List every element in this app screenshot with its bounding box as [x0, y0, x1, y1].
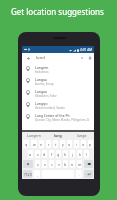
button[interactable]: d [42, 150, 47, 158]
staticText: u [68, 142, 71, 147]
staticText: q [25, 142, 28, 147]
staticText: s [37, 152, 39, 157]
button[interactable]: Back [22, 53, 94, 63]
staticText: t [55, 142, 57, 147]
staticText: Lungau [35, 77, 47, 81]
button[interactable]: ?123 [23, 170, 32, 178]
button[interactable]: , [34, 170, 40, 178]
staticText: h [64, 152, 67, 157]
staticText: lunge [77, 133, 87, 138]
button[interactable]: x [42, 160, 47, 168]
staticText: b [64, 162, 67, 167]
staticText: v [58, 162, 60, 167]
staticText: Get location suggestions [11, 6, 104, 17]
other: Back [26, 56, 31, 61]
other: Voice search [88, 56, 92, 60]
staticText: ?123 [24, 172, 32, 177]
staticText: n [71, 162, 74, 167]
staticText: Austria, Europ [35, 82, 54, 86]
staticText: i [76, 142, 77, 147]
staticText: . [79, 172, 80, 177]
button[interactable]: u [67, 140, 72, 148]
staticText: Lungsjo [35, 101, 48, 105]
staticText: Vasternorrland, Swede [35, 106, 65, 110]
staticText: w [33, 142, 36, 147]
button[interactable]: Lung Center of the Ph [22, 111, 94, 123]
staticText: j [72, 152, 73, 157]
staticText: Lungau [35, 89, 47, 93]
button[interactable]: Enter [84, 170, 93, 178]
staticText: Lung Center of the Ph [35, 113, 70, 117]
staticText: a [29, 152, 32, 157]
button[interactable]: y [60, 140, 65, 148]
button[interactable]: Backspace [84, 160, 93, 168]
button[interactable]: Lungern [22, 63, 94, 75]
button[interactable]: Lungau [22, 75, 94, 87]
button[interactable]: k [77, 150, 82, 158]
button[interactable]: Lungern [22, 132, 46, 139]
button[interactable]: q [23, 140, 29, 148]
staticText: o [82, 142, 85, 147]
button[interactable]: f [49, 150, 54, 158]
button[interactable]: Lungsjo [22, 99, 94, 111]
button[interactable]: lunge [70, 132, 94, 139]
button[interactable]: n [70, 160, 75, 168]
staticText: g [57, 152, 60, 157]
button[interactable]: r [46, 140, 51, 148]
staticText: k [79, 152, 81, 157]
button[interactable]: b [63, 160, 68, 168]
other: Backspace [87, 162, 91, 166]
button[interactable]: m [77, 160, 82, 168]
staticText: Lungern [27, 133, 41, 138]
staticText: c [51, 162, 53, 167]
button[interactable]: l [84, 150, 89, 158]
button[interactable]: h [63, 150, 68, 158]
staticText: Switzerlan [35, 70, 49, 74]
staticText: x [44, 162, 46, 167]
staticText: lung [54, 133, 62, 138]
staticText: 4:01 AM [80, 48, 93, 52]
staticText: f [51, 152, 53, 157]
button[interactable]: a [28, 150, 33, 158]
staticText: r [48, 142, 50, 147]
button[interactable]: c [49, 160, 54, 168]
button[interactable]: e [39, 140, 44, 148]
button[interactable]: s [35, 150, 40, 158]
button[interactable]: z [35, 160, 40, 168]
staticText: m [78, 162, 82, 167]
staticText: y [62, 142, 64, 147]
staticText: Lungern [35, 65, 49, 69]
button[interactable]: Shift [23, 160, 33, 168]
button[interactable]: t [53, 140, 58, 148]
button[interactable]: o [81, 140, 86, 148]
other: Enter [87, 172, 91, 176]
staticText: Quezon City, Metro Manila, Philippines, … [35, 118, 89, 122]
button[interactable]: lung [46, 132, 70, 139]
other: Clear text [80, 56, 84, 60]
button[interactable]: i [74, 140, 79, 148]
staticText: , [37, 172, 38, 177]
other: Shift [26, 162, 30, 166]
staticText: e [40, 142, 43, 147]
button[interactable]: j [70, 150, 75, 158]
button[interactable]: v [56, 160, 61, 168]
button[interactable]: . [76, 170, 82, 178]
staticText: d [43, 152, 46, 157]
staticText: lund [36, 55, 45, 61]
button[interactable]: p [88, 140, 93, 148]
staticText: l [86, 152, 87, 157]
button[interactable]: g [56, 150, 61, 158]
button[interactable]: Lungau [22, 87, 94, 99]
staticText: p [89, 142, 92, 147]
staticText: z [37, 162, 39, 167]
button[interactable]: w [31, 140, 37, 148]
staticText: Obwalden, Switz [35, 94, 57, 98]
